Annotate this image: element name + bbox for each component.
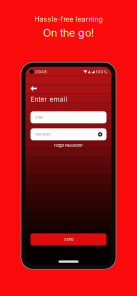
staticText: Forgot Password? <box>54 143 83 148</box>
staticText: Password <box>34 132 50 137</box>
button[interactable]: Send <box>25 233 111 245</box>
staticText: 100% <box>95 69 107 74</box>
button[interactable]: Forgot Password? <box>25 140 111 149</box>
staticText: On the go! <box>43 26 94 39</box>
staticText: Email <box>34 115 43 120</box>
staticText: Hassle-free learning <box>34 15 102 23</box>
staticText: 09:48 <box>35 69 46 74</box>
staticText: Send <box>64 237 73 242</box>
button[interactable]: Back <box>25 77 41 93</box>
staticText: Enter email <box>30 95 67 103</box>
